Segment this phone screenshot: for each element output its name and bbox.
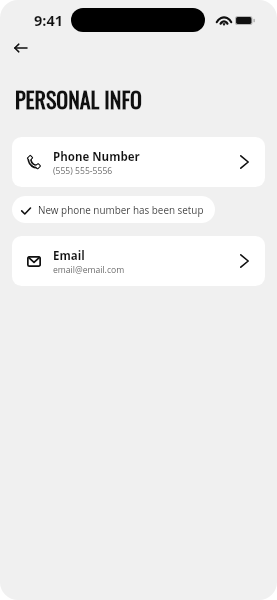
staticText: email@email.com <box>53 264 125 276</box>
staticText: New phone number has been setup <box>38 203 204 216</box>
button[interactable]: Back <box>6 36 34 60</box>
staticText: PERSONAL INFO <box>15 83 142 116</box>
staticText: 9:41 <box>34 11 63 31</box>
staticText: Email <box>53 248 85 264</box>
button[interactable]: New phone number has been setup <box>12 196 215 223</box>
button[interactable]: Email <box>12 236 265 286</box>
staticText: (555) 555-5556 <box>53 165 113 177</box>
button[interactable]: Phone Number <box>12 137 265 187</box>
staticText: Phone Number <box>53 149 140 165</box>
